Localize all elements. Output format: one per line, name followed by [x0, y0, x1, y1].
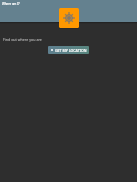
- staticText: Where am I?: [2, 2, 20, 6]
- staticText: Find out where you are: [3, 37, 42, 42]
- staticText: GET MY LOCATION: [55, 48, 87, 53]
- button[interactable]: GET MY LOCATION: [48, 46, 89, 54]
